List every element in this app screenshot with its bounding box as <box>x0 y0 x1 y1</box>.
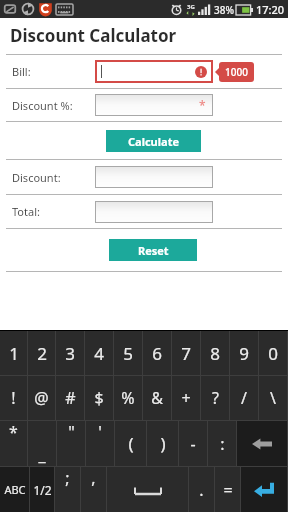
button[interactable]: 0 <box>259 331 287 375</box>
staticText: @ <box>34 387 49 409</box>
button[interactable]: 1 <box>0 331 27 375</box>
button[interactable]: ABC <box>0 467 29 512</box>
button[interactable]: ( <box>115 421 146 466</box>
button[interactable]: 9 <box>230 331 258 375</box>
button[interactable]: = <box>215 467 240 512</box>
button[interactable]: Calculate <box>106 130 201 152</box>
staticText: Discount %: <box>12 98 73 113</box>
button[interactable]: Enter <box>241 467 287 512</box>
button[interactable]: ' <box>86 421 114 466</box>
staticText: 17:20 <box>256 2 285 17</box>
button[interactable]: $ <box>85 376 113 420</box>
staticText: " <box>68 421 75 443</box>
button[interactable]: ! <box>0 376 27 420</box>
staticText: ; <box>65 467 70 489</box>
button[interactable]: @ <box>28 376 55 420</box>
button[interactable]: 3 <box>56 331 84 375</box>
button[interactable]: 4 <box>85 331 113 375</box>
button[interactable]: 7 <box>172 331 200 375</box>
button[interactable] <box>95 60 213 83</box>
button[interactable]: 8 <box>201 331 229 375</box>
staticText: ABC <box>4 482 26 497</box>
button[interactable]: 1/2 <box>30 467 54 512</box>
staticText: 8 <box>210 342 220 365</box>
staticText: Bill: <box>12 64 31 79</box>
staticText: = <box>223 479 233 501</box>
button[interactable]: & <box>143 376 171 420</box>
staticText: Calculate <box>128 134 179 149</box>
staticText: - <box>190 433 196 455</box>
button[interactable]: 1000 <box>219 62 254 82</box>
staticText: Reset <box>138 243 169 258</box>
staticText: # <box>65 387 76 409</box>
staticText: ) <box>160 432 166 455</box>
button[interactable]: : <box>208 421 236 466</box>
staticText: . <box>199 479 204 501</box>
staticText: 9 <box>239 342 249 365</box>
button[interactable]: . <box>189 467 214 512</box>
staticText: 6 <box>152 342 162 365</box>
staticText: $ <box>94 387 104 409</box>
button[interactable]: , <box>81 467 106 512</box>
staticText: * <box>199 97 206 113</box>
button[interactable]: " <box>57 421 85 466</box>
staticText: 5 <box>123 342 133 365</box>
button[interactable]: Space <box>107 467 188 512</box>
button[interactable]: ; <box>55 467 80 512</box>
staticText: 2 <box>37 342 47 365</box>
staticText: * <box>9 421 18 443</box>
button[interactable]: 2 <box>28 331 55 375</box>
button[interactable]: * <box>95 94 213 116</box>
staticText: 3 <box>65 342 75 365</box>
button[interactable]: 6 <box>143 331 171 375</box>
button[interactable]: Reset <box>109 239 197 261</box>
button[interactable]: - <box>179 421 207 466</box>
button[interactable]: / <box>230 376 258 420</box>
button[interactable]: 5 <box>114 331 142 375</box>
button[interactable]: % <box>114 376 142 420</box>
staticText: / <box>241 387 247 409</box>
button[interactable]: ? <box>201 376 229 420</box>
staticText: _ <box>38 444 46 466</box>
staticText: 1/2 <box>33 482 52 498</box>
staticText: Discount: <box>12 170 61 185</box>
staticText: 0 <box>268 342 278 365</box>
staticText: + <box>181 387 191 409</box>
staticText: & <box>151 387 163 409</box>
staticText: % <box>121 387 135 409</box>
button[interactable]: _ <box>28 421 56 466</box>
button[interactable]: * <box>0 421 27 466</box>
button[interactable]: ) <box>147 421 178 466</box>
staticText: Discount Calculator <box>10 24 177 47</box>
staticText: , <box>91 467 96 489</box>
staticText: \ <box>270 387 276 409</box>
button[interactable]: Backspace <box>237 421 287 466</box>
staticText: 3G <box>187 3 195 11</box>
button[interactable] <box>95 201 213 223</box>
staticText: 38% <box>214 3 234 17</box>
button[interactable] <box>95 166 213 188</box>
button[interactable]: + <box>172 376 200 420</box>
staticText: ( <box>128 432 134 455</box>
button[interactable]: \ <box>259 376 287 420</box>
staticText: : <box>220 433 225 455</box>
staticText: Total: <box>12 204 40 219</box>
staticText: ! <box>11 387 16 409</box>
staticText: 7 <box>181 342 191 365</box>
button[interactable]: # <box>56 376 84 420</box>
staticText: ' <box>98 421 102 443</box>
staticText: ? <box>212 387 219 409</box>
staticText: 4 <box>94 342 104 365</box>
staticText: 1000 <box>225 65 248 79</box>
staticText: 1 <box>9 342 19 365</box>
